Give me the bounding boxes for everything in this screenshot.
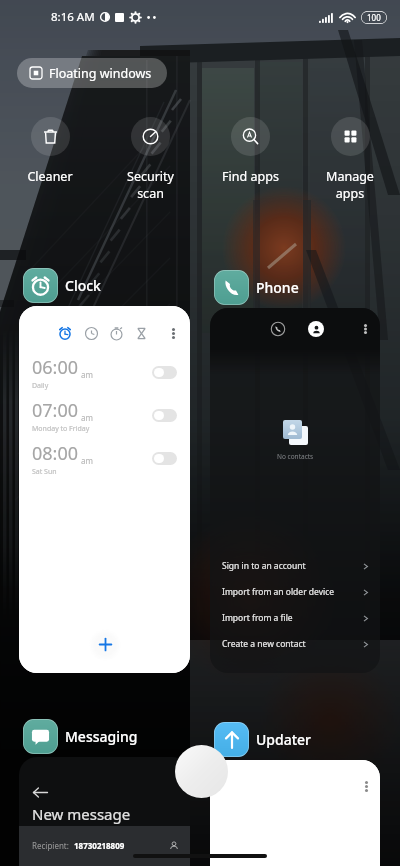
button[interactable]: 06:00 — [19, 306, 190, 673]
button[interactable]: Floating windows — [17, 58, 167, 88]
staticText: Import from a file — [222, 612, 293, 624]
button[interactable] — [152, 409, 177, 422]
button[interactable]: Security scan — [100, 117, 200, 201]
staticText: Import from an older device — [222, 586, 335, 598]
staticText: Monday to Friday — [32, 424, 90, 434]
button[interactable]: Find apps — [200, 117, 300, 185]
staticText: Daily — [32, 381, 49, 391]
staticText: am — [79, 369, 94, 380]
staticText: Sign in to an account — [222, 560, 306, 572]
button[interactable]: Clock — [23, 268, 101, 303]
staticText: 100 — [367, 12, 381, 23]
button[interactable]: Messaging — [23, 719, 138, 754]
staticText: Messaging — [65, 727, 138, 746]
staticText: am — [79, 455, 94, 466]
staticText: Cleaner — [27, 168, 73, 185]
button[interactable]: Recipient: — [19, 826, 190, 866]
button[interactable]: 07:00 — [19, 394, 190, 437]
staticText: 18730218809 — [74, 840, 125, 851]
button[interactable]: Cleaner — [0, 117, 100, 185]
staticText: Create a new contact — [222, 638, 306, 650]
button[interactable] — [152, 452, 177, 465]
button[interactable]: 08:00 — [19, 437, 190, 480]
button[interactable]: 06:00 — [19, 351, 190, 394]
staticText: 06:00 — [32, 355, 79, 380]
staticText: Find apps — [222, 168, 279, 185]
staticText: 8:16 AM — [51, 9, 95, 25]
staticText: Phone — [256, 278, 299, 297]
staticText: Updater — [256, 730, 312, 749]
button[interactable]: Updater — [214, 722, 312, 757]
staticText: Security scan — [127, 168, 174, 201]
button[interactable]: Phone — [214, 270, 299, 305]
button[interactable]: New message — [19, 757, 190, 866]
button[interactable] — [152, 366, 177, 379]
button[interactable]: Create a new contact — [210, 631, 380, 657]
staticText: New message — [32, 804, 131, 824]
staticText: No contacts — [277, 452, 314, 461]
button[interactable]: Import from a file — [210, 605, 380, 631]
staticText: Recipient: — [32, 840, 69, 851]
button[interactable]: Manage apps — [300, 117, 400, 201]
staticText: am — [79, 412, 94, 423]
button[interactable] — [210, 760, 380, 866]
button[interactable]: Sign in to an account — [210, 553, 380, 579]
button[interactable] — [87, 630, 123, 666]
button[interactable]: Floating bubble — [175, 745, 228, 798]
button[interactable]: No contacts — [210, 308, 380, 673]
staticText: Sat Sun — [32, 467, 57, 477]
staticText: 08:00 — [32, 441, 79, 466]
staticText: Clock — [65, 276, 101, 295]
button[interactable]: Import from an older device — [210, 579, 380, 605]
staticText: Manage apps — [326, 168, 374, 201]
staticText: Floating windows — [49, 65, 152, 82]
staticText: 07:00 — [32, 398, 79, 423]
